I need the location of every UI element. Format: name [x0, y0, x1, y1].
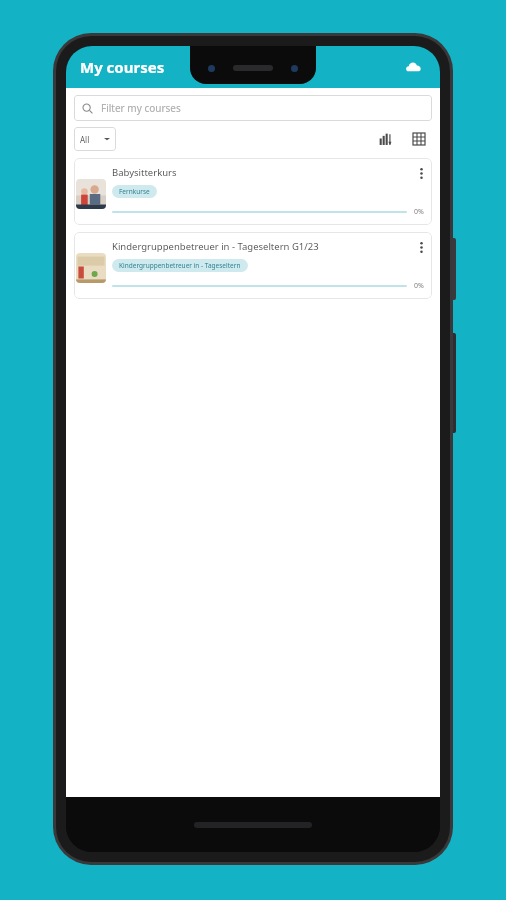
button[interactable]: All [74, 127, 116, 151]
staticText: Babysitterkurs [112, 166, 410, 179]
button[interactable]: Kindergruppenbetreuer in - Tageseltern G… [74, 232, 432, 299]
staticText: Kindergruppenbetreuer in - Tageseltern [119, 261, 241, 270]
staticText: 0% [414, 207, 424, 217]
button[interactable]: Sort [374, 128, 396, 150]
button[interactable]: Filter my courses [74, 95, 432, 121]
staticText: Fernkurse [119, 187, 150, 196]
staticText: 0% [414, 281, 424, 291]
button[interactable]: Grid view [408, 128, 430, 150]
staticText: My courses [80, 57, 165, 77]
button[interactable]: Babysitterkurs [74, 158, 432, 225]
button[interactable]: Upload [400, 54, 426, 80]
staticText: Kindergruppenbetreuer in - Tageseltern G… [112, 240, 410, 253]
button[interactable]: More options [410, 240, 432, 254]
button[interactable]: More options [410, 166, 432, 180]
staticText: All [80, 134, 90, 145]
staticText: Filter my courses [101, 101, 181, 115]
